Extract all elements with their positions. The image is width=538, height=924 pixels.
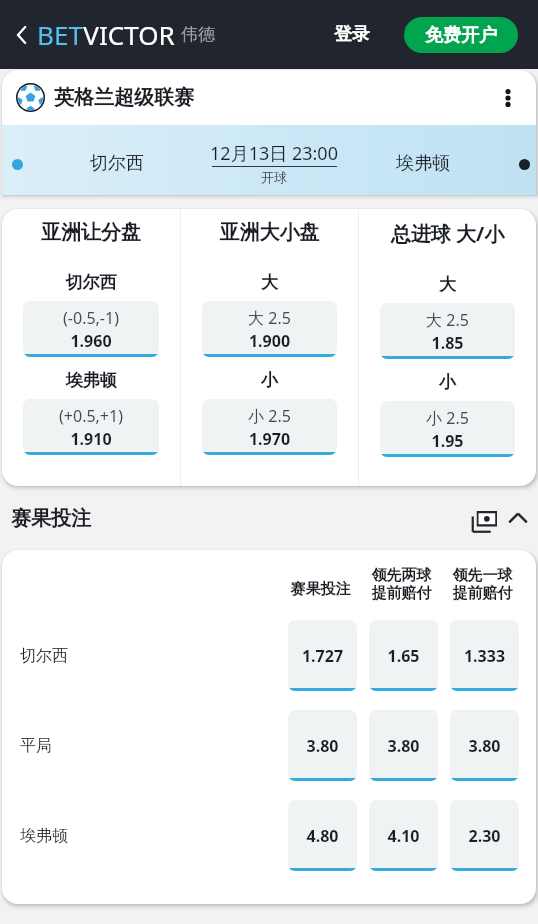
button[interactable]: 4.80: [288, 800, 357, 871]
staticText: 3.80: [450, 735, 519, 757]
staticText: 12月13日 23:00: [199, 141, 349, 166]
staticText: 英格兰超级联赛: [54, 85, 194, 110]
button[interactable]: Back: [7, 20, 37, 50]
staticText: 埃弗顿: [23, 370, 159, 391]
button[interactable]: 1.727: [288, 620, 357, 691]
staticText: 平局: [20, 736, 52, 756]
staticText: 赛果投注: [11, 506, 91, 531]
staticText: 2.30: [450, 825, 519, 847]
button[interactable]: 小 2.5: [202, 399, 337, 455]
staticText: 大 2.5: [202, 307, 337, 329]
staticText: 免费开户: [425, 24, 497, 47]
button[interactable]: 免费开户: [404, 17, 518, 53]
button[interactable]: 大 2.5: [202, 301, 337, 357]
staticText: 1.910: [23, 428, 159, 450]
staticText: 小: [202, 370, 337, 391]
staticText: 切尔西: [23, 272, 159, 293]
button[interactable]: 3.80: [450, 710, 519, 781]
button[interactable]: 2.30: [450, 800, 519, 871]
staticText: 小 2.5: [380, 407, 515, 429]
button[interactable]: 3.80: [288, 710, 357, 781]
staticText: 1.900: [202, 330, 337, 352]
button[interactable]: 1.333: [450, 620, 519, 691]
staticText: 亚洲让分盘: [23, 220, 159, 245]
staticText: (-0.5,-1): [23, 307, 159, 329]
staticText: 开球: [199, 169, 349, 185]
staticText: 3.80: [288, 735, 357, 757]
button[interactable]: (+0.5,+1): [23, 399, 159, 455]
staticText: 1.85: [380, 332, 515, 354]
button[interactable]: 4.10: [369, 800, 438, 871]
staticText: 埃弗顿: [396, 152, 450, 175]
button[interactable]: 1.65: [369, 620, 438, 691]
button[interactable]: 登录: [326, 15, 378, 54]
staticText: 1.333: [450, 645, 519, 667]
button[interactable]: Collapse section: [502, 502, 534, 534]
button[interactable]: 切尔西: [2, 125, 536, 195]
staticText: 1.970: [202, 428, 337, 450]
staticText: 切尔西: [20, 646, 68, 666]
button[interactable]: 小 2.5: [380, 401, 515, 457]
staticText: 领先两球 提前赔付: [367, 566, 436, 602]
staticText: 领先一球 提前赔付: [448, 566, 517, 602]
staticText: 1.65: [369, 645, 438, 667]
staticText: VICTOR: [83, 17, 175, 52]
staticText: 1.960: [23, 330, 159, 352]
staticText: 小 2.5: [202, 405, 337, 427]
staticText: 3.80: [369, 735, 438, 757]
staticText: BET: [37, 17, 83, 52]
staticText: 1.727: [288, 645, 357, 667]
button[interactable]: (-0.5,-1): [23, 301, 159, 357]
staticText: 4.80: [288, 825, 357, 847]
staticText: 大: [380, 274, 515, 295]
staticText: 埃弗顿: [20, 826, 68, 846]
staticText: 1.95: [380, 430, 515, 452]
staticText: 登录: [334, 23, 370, 46]
staticText: 亚洲大小盘: [202, 220, 337, 245]
staticText: 4.10: [369, 825, 438, 847]
button[interactable]: 3.80: [369, 710, 438, 781]
button[interactable]: More options: [490, 80, 526, 116]
staticText: 小: [380, 372, 515, 393]
button[interactable]: 大 2.5: [380, 303, 515, 359]
staticText: 大 2.5: [380, 309, 515, 331]
button[interactable]: Cash out: [468, 502, 500, 534]
staticText: (+0.5,+1): [23, 405, 159, 427]
staticText: 赛果投注: [286, 580, 355, 599]
staticText: 大: [202, 272, 337, 293]
staticText: 总进球 大/小: [380, 220, 515, 247]
staticText: 伟德: [181, 24, 215, 45]
staticText: 切尔西: [90, 152, 144, 175]
